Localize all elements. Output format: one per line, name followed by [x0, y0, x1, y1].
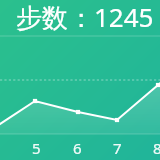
staticText: 5 [32, 138, 41, 158]
staticText: 6 [73, 138, 82, 158]
button[interactable]: 步数：1245 [0, 0, 160, 36]
staticText: 8 [153, 138, 160, 158]
button[interactable]: Step count chart [0, 0, 160, 160]
staticText: 7 [113, 138, 122, 158]
staticText: 步数：1245 [16, 0, 154, 35]
